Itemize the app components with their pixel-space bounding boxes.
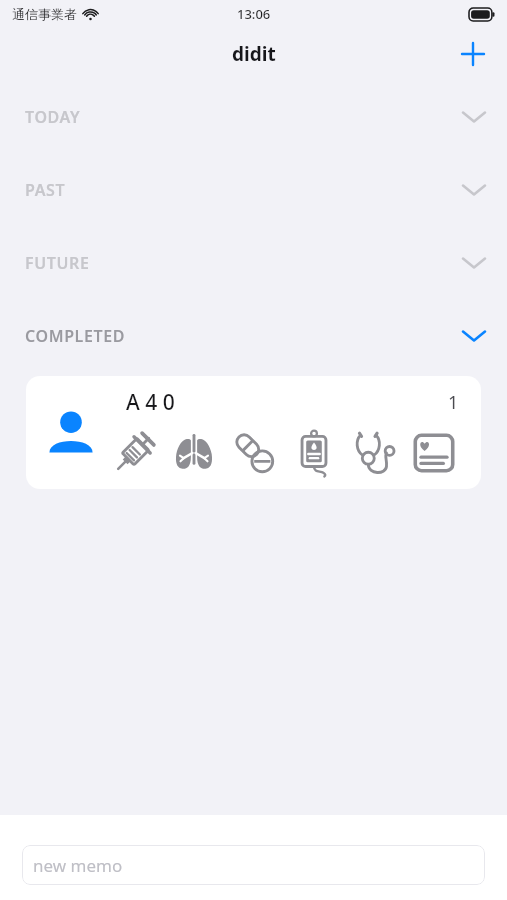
button[interactable]: Add	[451, 32, 495, 76]
staticText: 13:06	[237, 5, 271, 23]
button[interactable]: COMPLETED	[0, 299, 507, 372]
staticText: FUTURE	[25, 252, 90, 274]
button[interactable]: PAST	[0, 153, 507, 226]
staticText: 1	[448, 390, 459, 415]
staticText: new memo	[33, 854, 123, 877]
staticText: PAST	[25, 179, 66, 201]
staticText: TODAY	[25, 106, 81, 128]
button[interactable]: A 4 0	[26, 376, 481, 489]
button[interactable]: new memo	[22, 845, 485, 885]
staticText: COMPLETED	[25, 325, 125, 347]
button[interactable]: TODAY	[0, 80, 507, 153]
staticText: 通信事業者	[12, 6, 77, 22]
staticText: A 4 0	[126, 388, 175, 417]
staticText: didit	[232, 41, 276, 67]
button[interactable]: FUTURE	[0, 226, 507, 299]
